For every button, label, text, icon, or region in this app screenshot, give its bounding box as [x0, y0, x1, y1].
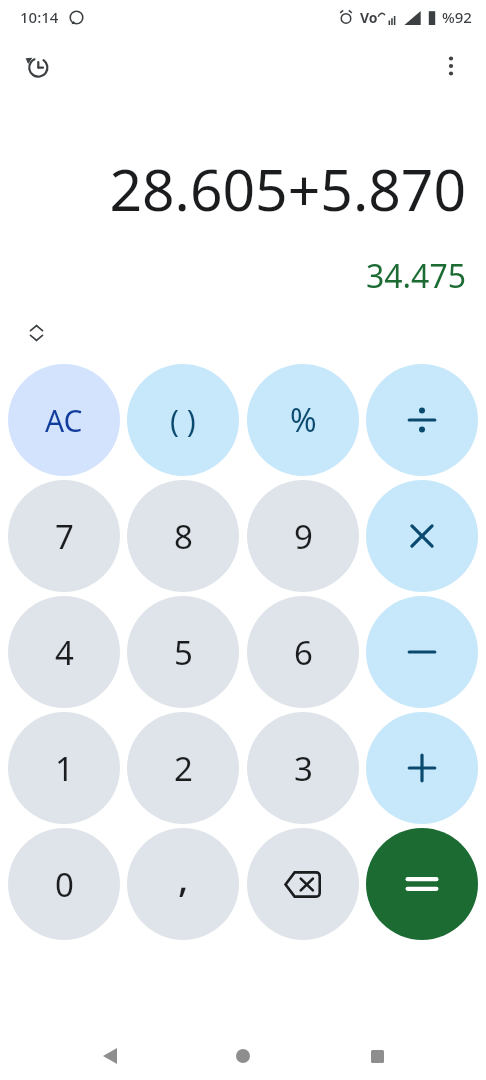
button[interactable]: 8 [127, 480, 239, 592]
button[interactable]: Equals [366, 828, 478, 940]
button[interactable]: 6 [247, 596, 359, 708]
staticText: 5 [174, 630, 193, 675]
button[interactable]: Back [86, 1032, 134, 1080]
staticText: , [178, 851, 189, 903]
button[interactable]: Backspace [247, 828, 359, 940]
button[interactable]: Percent [247, 364, 359, 476]
button[interactable]: 4 [8, 596, 120, 708]
staticText: 10:14 [20, 7, 59, 27]
staticText: 0 [55, 862, 74, 907]
staticText: 7 [55, 514, 74, 559]
button[interactable]: Divide [366, 364, 478, 476]
button[interactable]: Home [219, 1032, 267, 1080]
button[interactable]: Expand result [18, 318, 54, 348]
button[interactable]: 5 [127, 596, 239, 708]
button[interactable]: 9 [247, 480, 359, 592]
button[interactable]: Parentheses [127, 364, 239, 476]
staticText: AC [45, 400, 83, 441]
button[interactable]: History [14, 43, 60, 89]
button[interactable]: More options [428, 43, 474, 89]
staticText: 34.475 [0, 254, 466, 298]
staticText: ( ) [170, 400, 196, 441]
button[interactable]: Multiply [366, 480, 478, 592]
button[interactable]: Plus [366, 712, 478, 824]
staticText: %92 [442, 7, 472, 27]
staticText: 2 [174, 746, 193, 791]
button[interactable]: 1 [8, 712, 120, 824]
staticText: 9 [294, 514, 313, 559]
staticText: Vo [360, 8, 378, 27]
staticText: 28.605+5.870 [16, 150, 466, 228]
button[interactable]: 2 [127, 712, 239, 824]
staticText: % [290, 398, 317, 442]
button[interactable]: 7 [8, 480, 120, 592]
staticText: 8 [174, 514, 193, 559]
button[interactable]: Minus [366, 596, 478, 708]
button[interactable]: 3 [247, 712, 359, 824]
staticText: 6 [294, 630, 313, 675]
button[interactable]: Decimal separator [127, 828, 239, 940]
staticText: 1 [55, 746, 74, 791]
button[interactable]: AC [8, 364, 120, 476]
button[interactable]: Recent apps [353, 1032, 401, 1080]
button[interactable]: 0 [8, 828, 120, 940]
staticText: 4 [55, 630, 74, 675]
staticText: 3 [294, 746, 313, 791]
